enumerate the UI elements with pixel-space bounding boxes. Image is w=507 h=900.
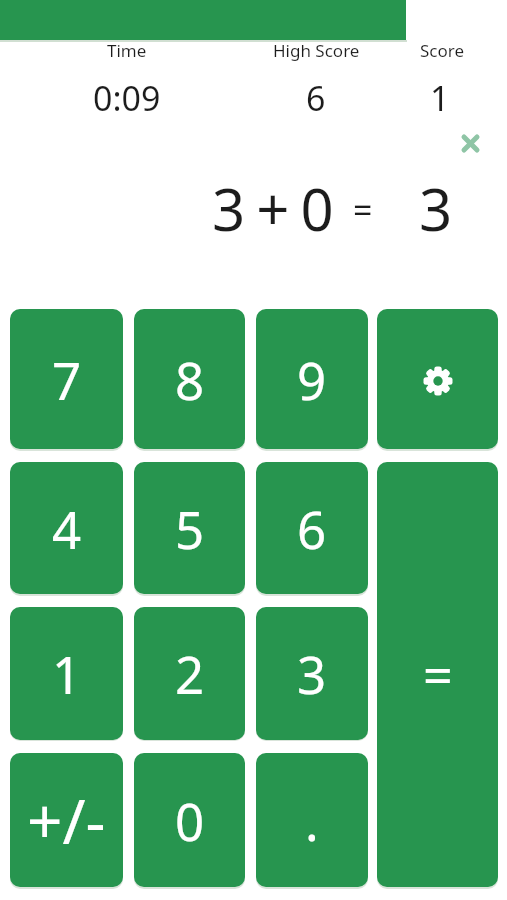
staticText: High Score (273, 39, 360, 61)
button[interactable]: 5 (134, 462, 245, 594)
button[interactable] (377, 309, 498, 449)
button[interactable]: . (256, 753, 368, 887)
button[interactable]: 8 (134, 309, 245, 449)
staticText: 4 (52, 494, 82, 563)
staticText: . (305, 786, 319, 855)
button[interactable]: 4 (10, 462, 123, 594)
button[interactable]: 0 (134, 753, 245, 887)
button[interactable]: 2 (134, 607, 245, 740)
button[interactable]: 1 (10, 607, 123, 740)
staticText: 9 (297, 345, 327, 414)
staticText: 3 (297, 639, 327, 708)
staticText: 6 (297, 494, 327, 563)
staticText: 5 (175, 494, 205, 563)
staticText: 1 (430, 75, 450, 119)
button[interactable]: +/- (10, 753, 123, 887)
staticText: 6 (306, 75, 326, 119)
staticText: 0:09 (93, 75, 161, 119)
button[interactable]: 9 (256, 309, 368, 449)
staticText: 2 (175, 639, 205, 708)
button[interactable]: = (377, 462, 498, 887)
staticText: 3 (419, 169, 453, 245)
staticText: 1 (52, 639, 82, 708)
staticText: = (353, 187, 373, 233)
staticText: +/- (27, 778, 106, 862)
button[interactable]: 3 (256, 607, 368, 740)
staticText: = (423, 639, 453, 710)
staticText: 7 (52, 345, 82, 414)
staticText: Time (107, 39, 147, 61)
staticText: 0 (175, 786, 205, 855)
button[interactable]: 7 (10, 309, 123, 449)
staticText: Score (420, 39, 465, 61)
staticText: 8 (175, 345, 205, 414)
staticText: 3 + 0 (212, 169, 332, 245)
button[interactable]: 6 (256, 462, 368, 594)
